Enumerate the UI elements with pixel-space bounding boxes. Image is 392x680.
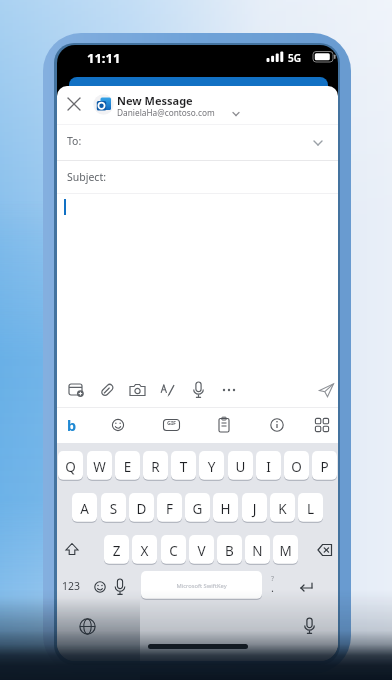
button[interactable]: Y — [199, 451, 224, 481]
staticText: U — [228, 458, 253, 488]
button[interactable]: b — [65, 416, 81, 434]
button[interactable]: X — [132, 535, 157, 565]
staticText: Y — [199, 458, 224, 488]
button[interactable] — [67, 381, 86, 399]
staticText: I — [256, 458, 281, 488]
staticText: 123 — [62, 579, 81, 593]
button[interactable] — [291, 572, 321, 602]
staticText: ? — [271, 574, 275, 584]
button[interactable] — [91, 572, 109, 602]
button[interactable]: 123 — [59, 572, 87, 602]
staticText: To: — [67, 134, 82, 148]
staticText: P — [312, 458, 337, 488]
button[interactable] — [65, 95, 83, 113]
button[interactable]: F — [157, 493, 182, 523]
button[interactable] — [128, 381, 147, 399]
staticText: GIF — [167, 419, 177, 426]
staticText: O — [284, 458, 309, 488]
staticText: F — [157, 500, 182, 530]
button[interactable] — [98, 381, 116, 399]
button[interactable] — [78, 617, 97, 636]
button[interactable]: S — [101, 493, 126, 523]
button[interactable]: O — [284, 451, 309, 481]
button[interactable]: GIF — [162, 416, 181, 434]
button[interactable]: Q — [58, 451, 83, 481]
staticText: K — [270, 500, 295, 530]
staticText: A — [72, 500, 97, 530]
staticText: X — [132, 542, 157, 572]
button[interactable] — [112, 572, 128, 602]
staticText: V — [189, 542, 214, 572]
button[interactable]: M — [273, 535, 298, 565]
button[interactable]: Z — [104, 535, 129, 565]
button[interactable]: D — [129, 493, 154, 523]
button[interactable]: N — [245, 535, 270, 565]
button[interactable] — [313, 416, 331, 434]
button[interactable]: W — [87, 451, 112, 481]
button[interactable] — [57, 535, 87, 565]
staticText: M — [273, 542, 298, 572]
button[interactable]: H — [213, 493, 238, 523]
staticText: Z — [104, 542, 129, 572]
staticText: DanielaHa@contoso.com — [117, 107, 215, 118]
staticText: T — [171, 458, 196, 488]
staticText: New Message — [117, 93, 193, 108]
staticText: W — [87, 458, 112, 488]
button[interactable] — [190, 381, 207, 399]
staticText: B — [217, 542, 242, 572]
staticText: Microsoft SwiftKey — [141, 582, 262, 611]
button[interactable] — [308, 535, 338, 565]
button[interactable] — [220, 381, 238, 399]
button[interactable] — [300, 616, 319, 636]
staticText: R — [143, 458, 168, 488]
button[interactable]: P — [312, 451, 337, 481]
button[interactable]: R — [143, 451, 168, 481]
button[interactable] — [57, 160, 338, 193]
staticText: 5G — [288, 51, 301, 65]
button[interactable]: G — [185, 493, 210, 523]
staticText: b — [67, 415, 77, 433]
button[interactable]: K — [270, 493, 295, 523]
staticText: J — [242, 500, 267, 530]
button[interactable]: J — [242, 493, 267, 523]
button[interactable]: U — [228, 451, 253, 481]
button[interactable]: I — [256, 451, 281, 481]
button[interactable] — [317, 381, 336, 399]
button[interactable] — [159, 381, 177, 399]
button[interactable]: T — [171, 451, 196, 481]
staticText: Subject: — [67, 170, 106, 184]
button[interactable]: A — [72, 493, 97, 523]
staticText: G — [185, 500, 210, 530]
staticText: S — [101, 500, 126, 530]
button[interactable]: V — [189, 535, 214, 565]
button[interactable] — [109, 416, 127, 434]
button[interactable] — [57, 124, 338, 159]
staticText: 11:11 — [87, 49, 121, 67]
button[interactable]: E — [115, 451, 140, 481]
button[interactable]: Microsoft SwiftKey — [141, 571, 262, 600]
button[interactable]: L — [298, 493, 323, 523]
button[interactable]: C — [161, 535, 186, 565]
staticText: L — [298, 500, 323, 530]
button[interactable] — [215, 416, 233, 434]
staticText: Q — [58, 458, 83, 488]
staticText: E — [115, 458, 140, 488]
staticText: . — [271, 580, 274, 595]
button[interactable]: B — [217, 535, 242, 565]
staticText: C — [161, 542, 186, 572]
staticText: D — [129, 500, 154, 530]
staticText: N — [245, 542, 270, 572]
button[interactable] — [268, 416, 286, 434]
staticText: H — [213, 500, 238, 530]
button[interactable]: ? — [267, 572, 281, 602]
